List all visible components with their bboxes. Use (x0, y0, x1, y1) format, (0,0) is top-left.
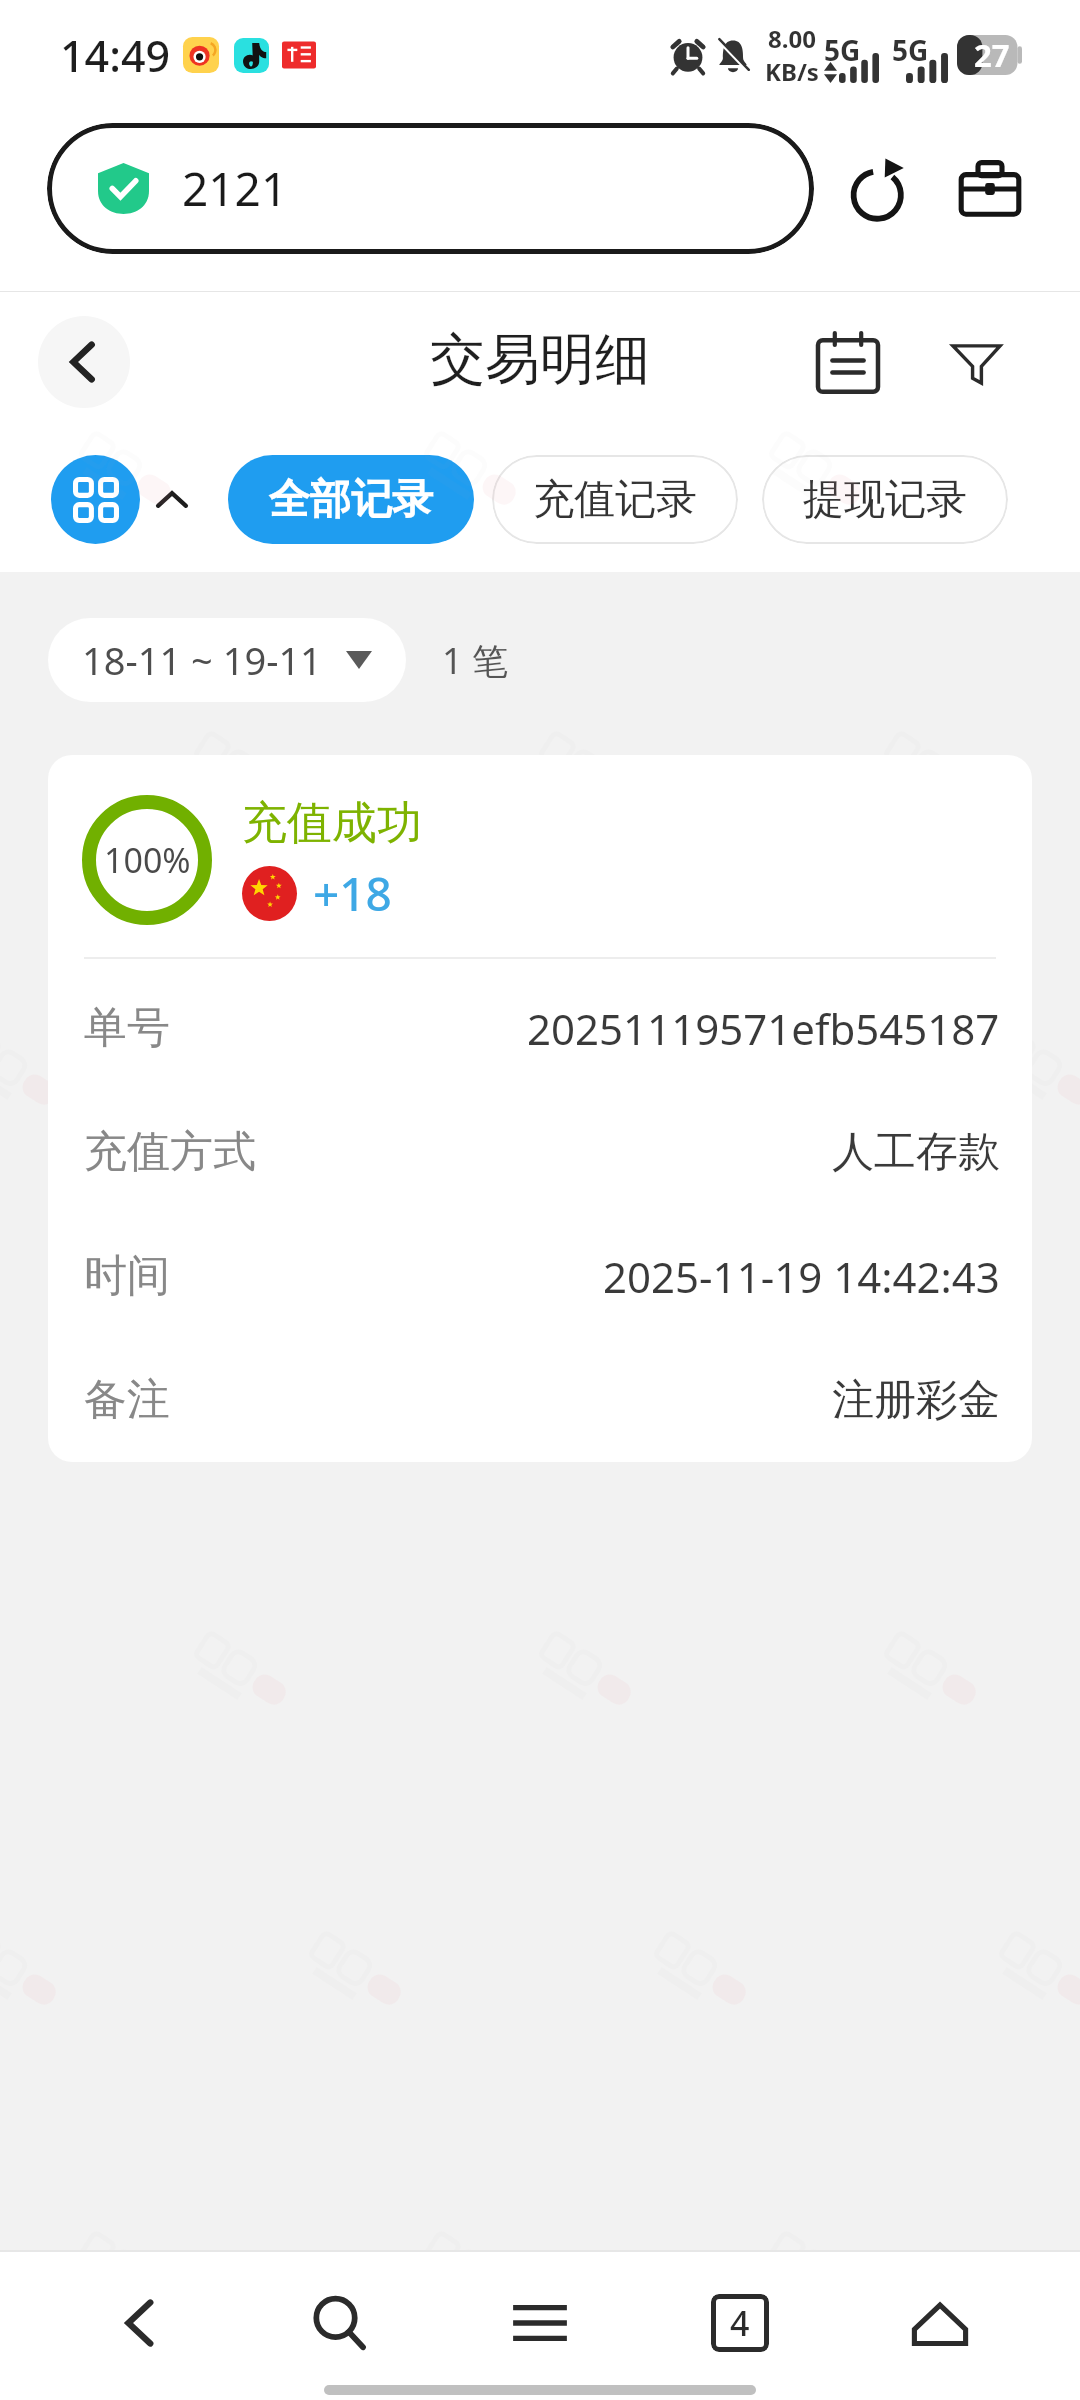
button[interactable]: Categories (51, 455, 140, 544)
button[interactable]: Refresh (842, 149, 922, 229)
button[interactable]: 充值记录 (492, 455, 738, 544)
staticText: 1 笔 (442, 636, 508, 685)
staticText: 时间 (84, 1249, 170, 1303)
button[interactable]: Calendar (809, 324, 887, 402)
button[interactable]: Search (280, 2263, 400, 2383)
staticText: 20251119571efb545187 (527, 1000, 1000, 1057)
staticText: KB/s (765, 55, 819, 88)
button[interactable]: Filter (937, 324, 1015, 402)
staticText: 人工存款 (832, 1126, 1000, 1179)
staticText: 充值记录 (533, 474, 697, 526)
button[interactable]: Menu (480, 2263, 600, 2383)
button[interactable]: Back (38, 316, 130, 408)
staticText: 充值成功 (242, 795, 422, 852)
staticText: 5G (824, 31, 861, 69)
staticText: 2025-11-19 14:42:43 (603, 1248, 1000, 1305)
staticText: 全部记录 (269, 474, 433, 526)
staticText: +18 (313, 862, 392, 925)
staticText: 提现记录 (803, 474, 967, 526)
button[interactable]: 全部记录 (228, 455, 474, 544)
staticText: 单号 (84, 1001, 170, 1055)
staticText: 8.00 (768, 22, 816, 55)
button[interactable]: 2121 (47, 123, 814, 254)
staticText: 充值方式 (84, 1125, 256, 1179)
staticText: 5G (892, 31, 929, 69)
staticText: 交易明细 (430, 325, 650, 394)
button[interactable]: 18-11 ~ 19-11 (48, 618, 406, 702)
button[interactable]: Back (80, 2263, 200, 2383)
staticText: 备注 (84, 1373, 170, 1427)
button[interactable]: Collapse (153, 468, 190, 530)
staticText: 27 (974, 34, 1010, 76)
button[interactable]: Tools (950, 149, 1030, 229)
staticText: 18-11 ~ 19-11 (82, 634, 322, 686)
staticText: 100% (104, 837, 191, 883)
staticText: 14:49 (60, 26, 171, 85)
staticText: 注册彩金 (832, 1374, 1000, 1427)
button[interactable]: Home (880, 2263, 1000, 2383)
button[interactable]: Tabs (680, 2263, 800, 2383)
staticText: 2121 (182, 157, 288, 220)
button[interactable]: 提现记录 (762, 455, 1008, 544)
staticText: 4 (730, 2300, 750, 2346)
